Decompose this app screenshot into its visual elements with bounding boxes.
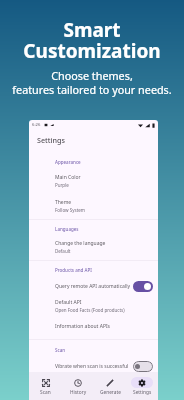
button[interactable]: Default API xyxy=(29,299,158,313)
button[interactable]: Vibrate when scan is successful xyxy=(29,361,158,372)
button[interactable]: Settings xyxy=(126,372,158,400)
staticText: Appearance xyxy=(55,159,81,165)
button[interactable]: Main Color xyxy=(29,174,158,188)
button[interactable]: Information about APIs xyxy=(29,323,158,330)
staticText: Change the language xyxy=(55,240,106,247)
staticText: Choose themes, features tailored to your… xyxy=(12,68,172,97)
button[interactable]: History xyxy=(62,372,94,400)
staticText: History xyxy=(70,389,87,396)
button[interactable]: Query remote API automatically xyxy=(29,281,158,292)
staticText: Open Food Facts (Food products) xyxy=(55,307,125,313)
staticText: Scan xyxy=(40,389,51,396)
button[interactable]: Scan xyxy=(29,372,62,400)
staticText: 6:26 xyxy=(32,122,41,128)
staticText: Languages xyxy=(55,226,79,232)
staticText: Settings xyxy=(133,389,152,396)
staticText: Default API xyxy=(55,299,82,306)
staticText: Settings xyxy=(37,135,65,145)
staticText: Information about APIs xyxy=(55,323,110,330)
staticText: Scan xyxy=(55,347,66,353)
staticText: Main Color xyxy=(55,174,81,181)
button[interactable]: Change the language xyxy=(29,240,158,254)
staticText: Default xyxy=(55,248,71,254)
staticText: Smart Customization xyxy=(23,17,161,64)
staticText: Follow System xyxy=(55,207,86,213)
staticText: Query remote API automatically xyxy=(55,283,133,290)
button[interactable]: Theme xyxy=(29,199,158,213)
staticText: Vibrate when scan is successful xyxy=(55,363,133,370)
button[interactable]: Generate xyxy=(94,372,126,400)
staticText: Generate xyxy=(100,389,121,396)
staticText: Purple xyxy=(55,182,69,188)
staticText: Theme xyxy=(55,199,72,206)
staticText: Products and API xyxy=(55,267,92,273)
